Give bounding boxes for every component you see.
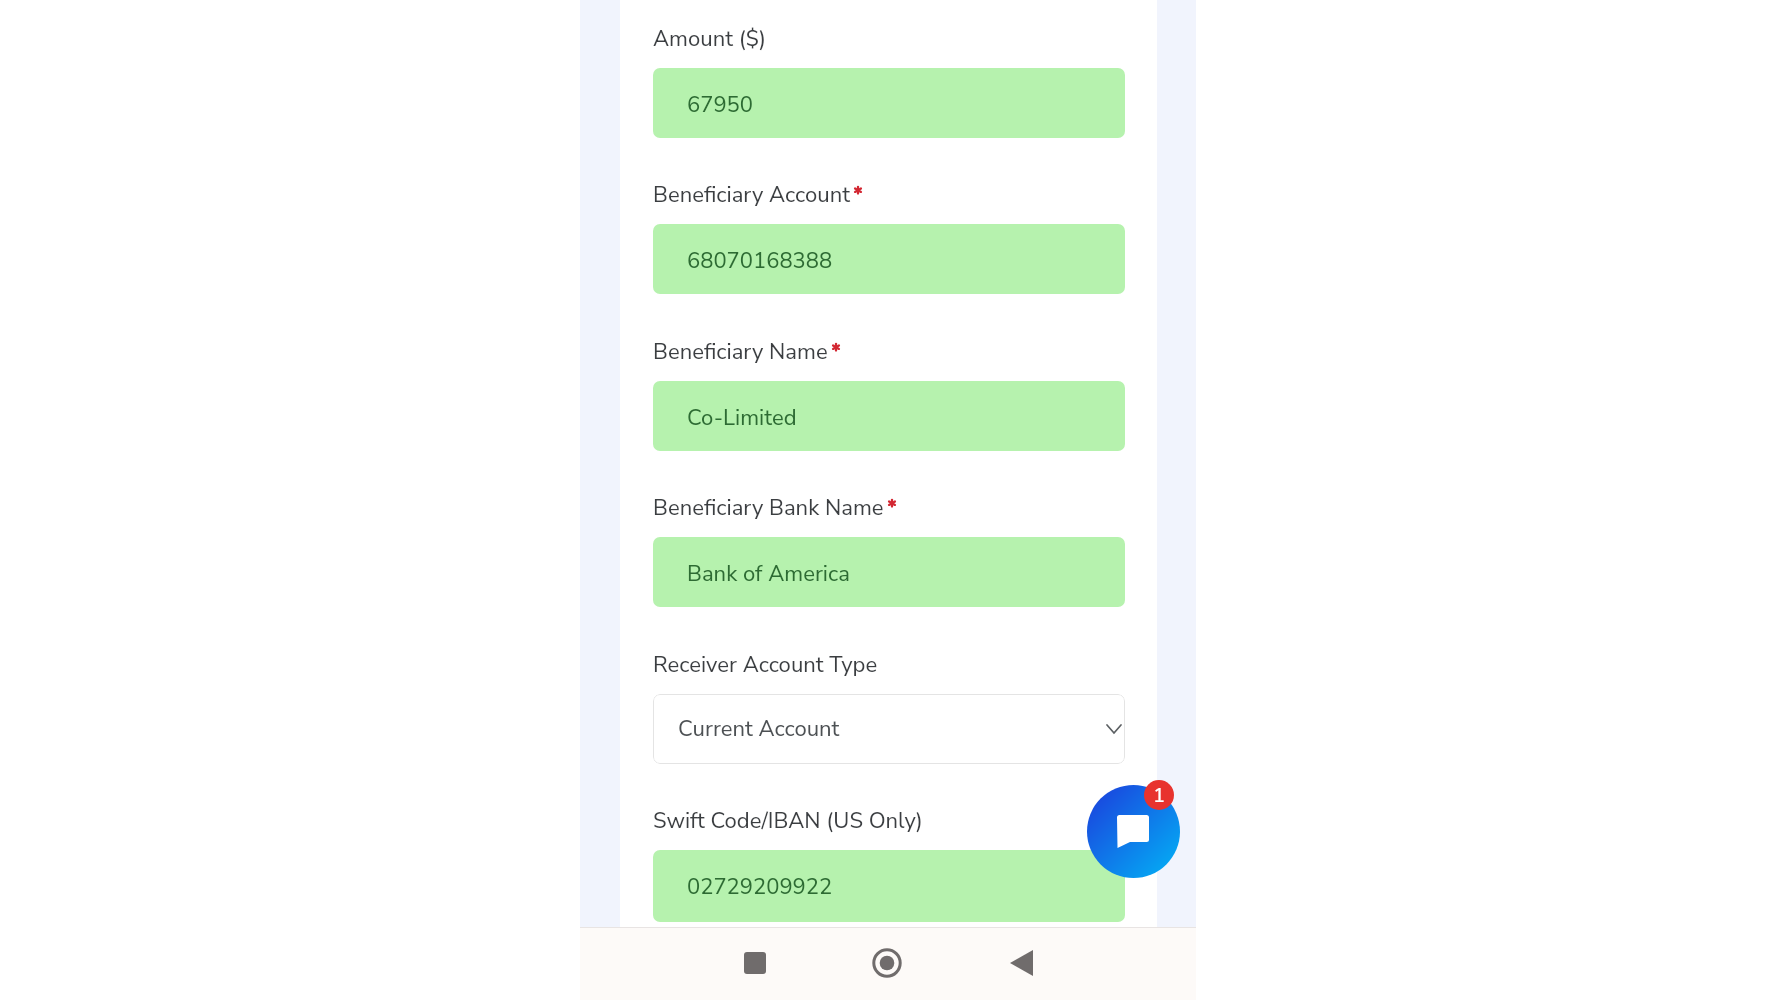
staticText: Beneficiary Account [653,180,850,210]
button[interactable]: Open chat [1087,785,1180,878]
button[interactable]: 02729209922 [653,850,1125,922]
staticText: Current Account [678,714,840,744]
staticText: Amount ($) [653,24,767,54]
button[interactable]: Back [991,933,1051,993]
button[interactable]: Co-Limited [653,381,1125,451]
staticText: 1 [1153,782,1165,809]
staticText: Bank of America [687,559,850,589]
staticText: Beneficiary Bank Name [653,493,884,523]
button[interactable]: Current Account [653,694,1125,764]
button[interactable]: 67950 [653,68,1125,138]
staticText: 02729209922 [687,872,833,902]
button[interactable]: Bank of America [653,537,1125,607]
staticText: Co-Limited [687,403,797,433]
staticText: 67950 [687,90,754,120]
other: 1 unread message [1144,780,1174,810]
staticText: Swift Code/IBAN (US Only) [653,806,923,836]
staticText: Beneficiary Name [653,337,828,367]
button[interactable]: Home [857,933,917,993]
button[interactable]: 68070168388 [653,224,1125,294]
staticText: Receiver Account Type [653,650,878,680]
staticText: 68070168388 [687,246,833,276]
button[interactable]: Recent apps [725,933,785,993]
